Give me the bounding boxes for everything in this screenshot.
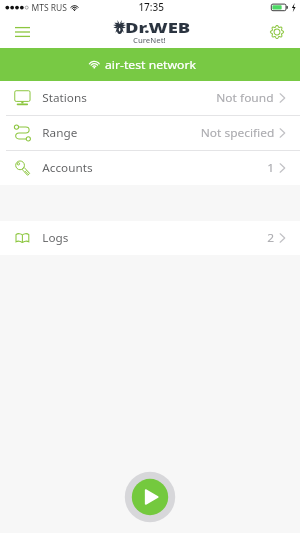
- button[interactable]: [0, 151, 300, 185]
- button[interactable]: [0, 221, 300, 255]
- button[interactable]: [0, 116, 300, 150]
- button[interactable]: Settings: [260, 16, 300, 48]
- button[interactable]: [0, 81, 300, 115]
- button[interactable]: Menu: [0, 16, 44, 48]
- button[interactable]: Start scan: [124, 471, 176, 523]
- button[interactable]: [0, 48, 300, 81]
